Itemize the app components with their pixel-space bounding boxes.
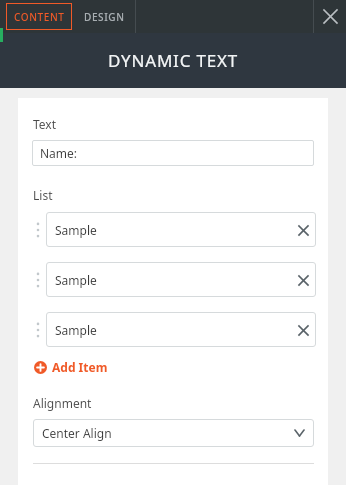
button[interactable]: Sample bbox=[46, 262, 316, 297]
staticText: Sample bbox=[55, 322, 97, 338]
button[interactable]: Sample bbox=[46, 312, 316, 347]
staticText: Alignment bbox=[33, 395, 92, 411]
button[interactable]: CONTENT bbox=[6, 3, 72, 30]
button[interactable]: Name: bbox=[32, 140, 314, 166]
button[interactable]: DESIGN bbox=[74, 0, 135, 33]
staticText: Text bbox=[33, 116, 57, 132]
staticText: Name: bbox=[40, 145, 78, 161]
staticText: Sample bbox=[55, 272, 97, 288]
button[interactable]: Close bbox=[314, 0, 346, 33]
button[interactable]: Reorder bbox=[32, 312, 43, 347]
button[interactable]: Add Item bbox=[34, 357, 108, 377]
staticText: Center Align bbox=[42, 425, 112, 441]
staticText: Add Item bbox=[52, 359, 108, 375]
button[interactable]: Center Align bbox=[33, 419, 314, 447]
staticText: DESIGN bbox=[84, 10, 125, 24]
button[interactable]: Reorder bbox=[32, 212, 43, 247]
button[interactable]: Remove item bbox=[290, 315, 316, 345]
staticText: List bbox=[33, 187, 53, 203]
button[interactable]: Remove item bbox=[290, 215, 316, 245]
staticText: CONTENT bbox=[14, 10, 65, 24]
button[interactable]: Sample bbox=[46, 212, 316, 247]
button[interactable]: Remove item bbox=[290, 265, 316, 295]
button[interactable]: Reorder bbox=[32, 262, 43, 297]
staticText: Sample bbox=[55, 222, 97, 238]
staticText: DYNAMIC TEXT bbox=[108, 49, 238, 72]
